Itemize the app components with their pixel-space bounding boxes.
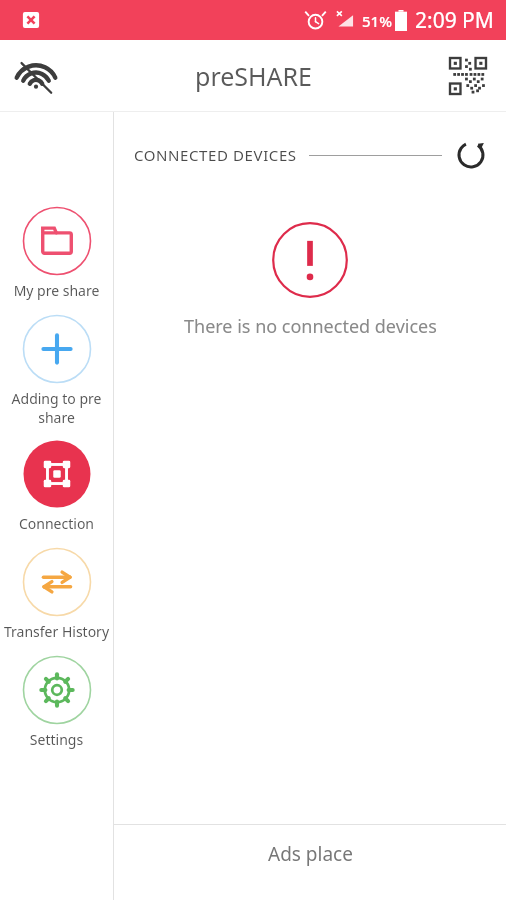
staticText: There is no connected devices <box>184 314 437 339</box>
staticText: My pre share <box>2 281 111 300</box>
button[interactable]: Ads place <box>114 825 506 900</box>
button[interactable]: Refresh <box>452 136 490 174</box>
button[interactable]: Scan QR code <box>440 48 496 104</box>
staticText: Adding to pre share <box>2 389 111 427</box>
staticText: preSHARE <box>195 59 312 93</box>
button[interactable]: Wi-Fi off <box>8 48 64 104</box>
staticText: CONNECTED DEVICES <box>134 145 297 165</box>
staticText: 2:09 PM <box>415 6 494 35</box>
staticText: 51% <box>362 11 392 31</box>
staticText: Transfer History <box>2 622 111 641</box>
button[interactable]: Transfer History <box>0 545 113 643</box>
button[interactable]: Connection <box>0 437 113 535</box>
staticText: Connection <box>2 514 111 533</box>
staticText: Ads place <box>268 841 353 867</box>
button[interactable]: Settings <box>0 653 113 751</box>
button[interactable]: Adding to pre share <box>0 312 113 429</box>
button[interactable]: My pre share <box>0 204 113 302</box>
staticText: Settings <box>2 730 111 749</box>
